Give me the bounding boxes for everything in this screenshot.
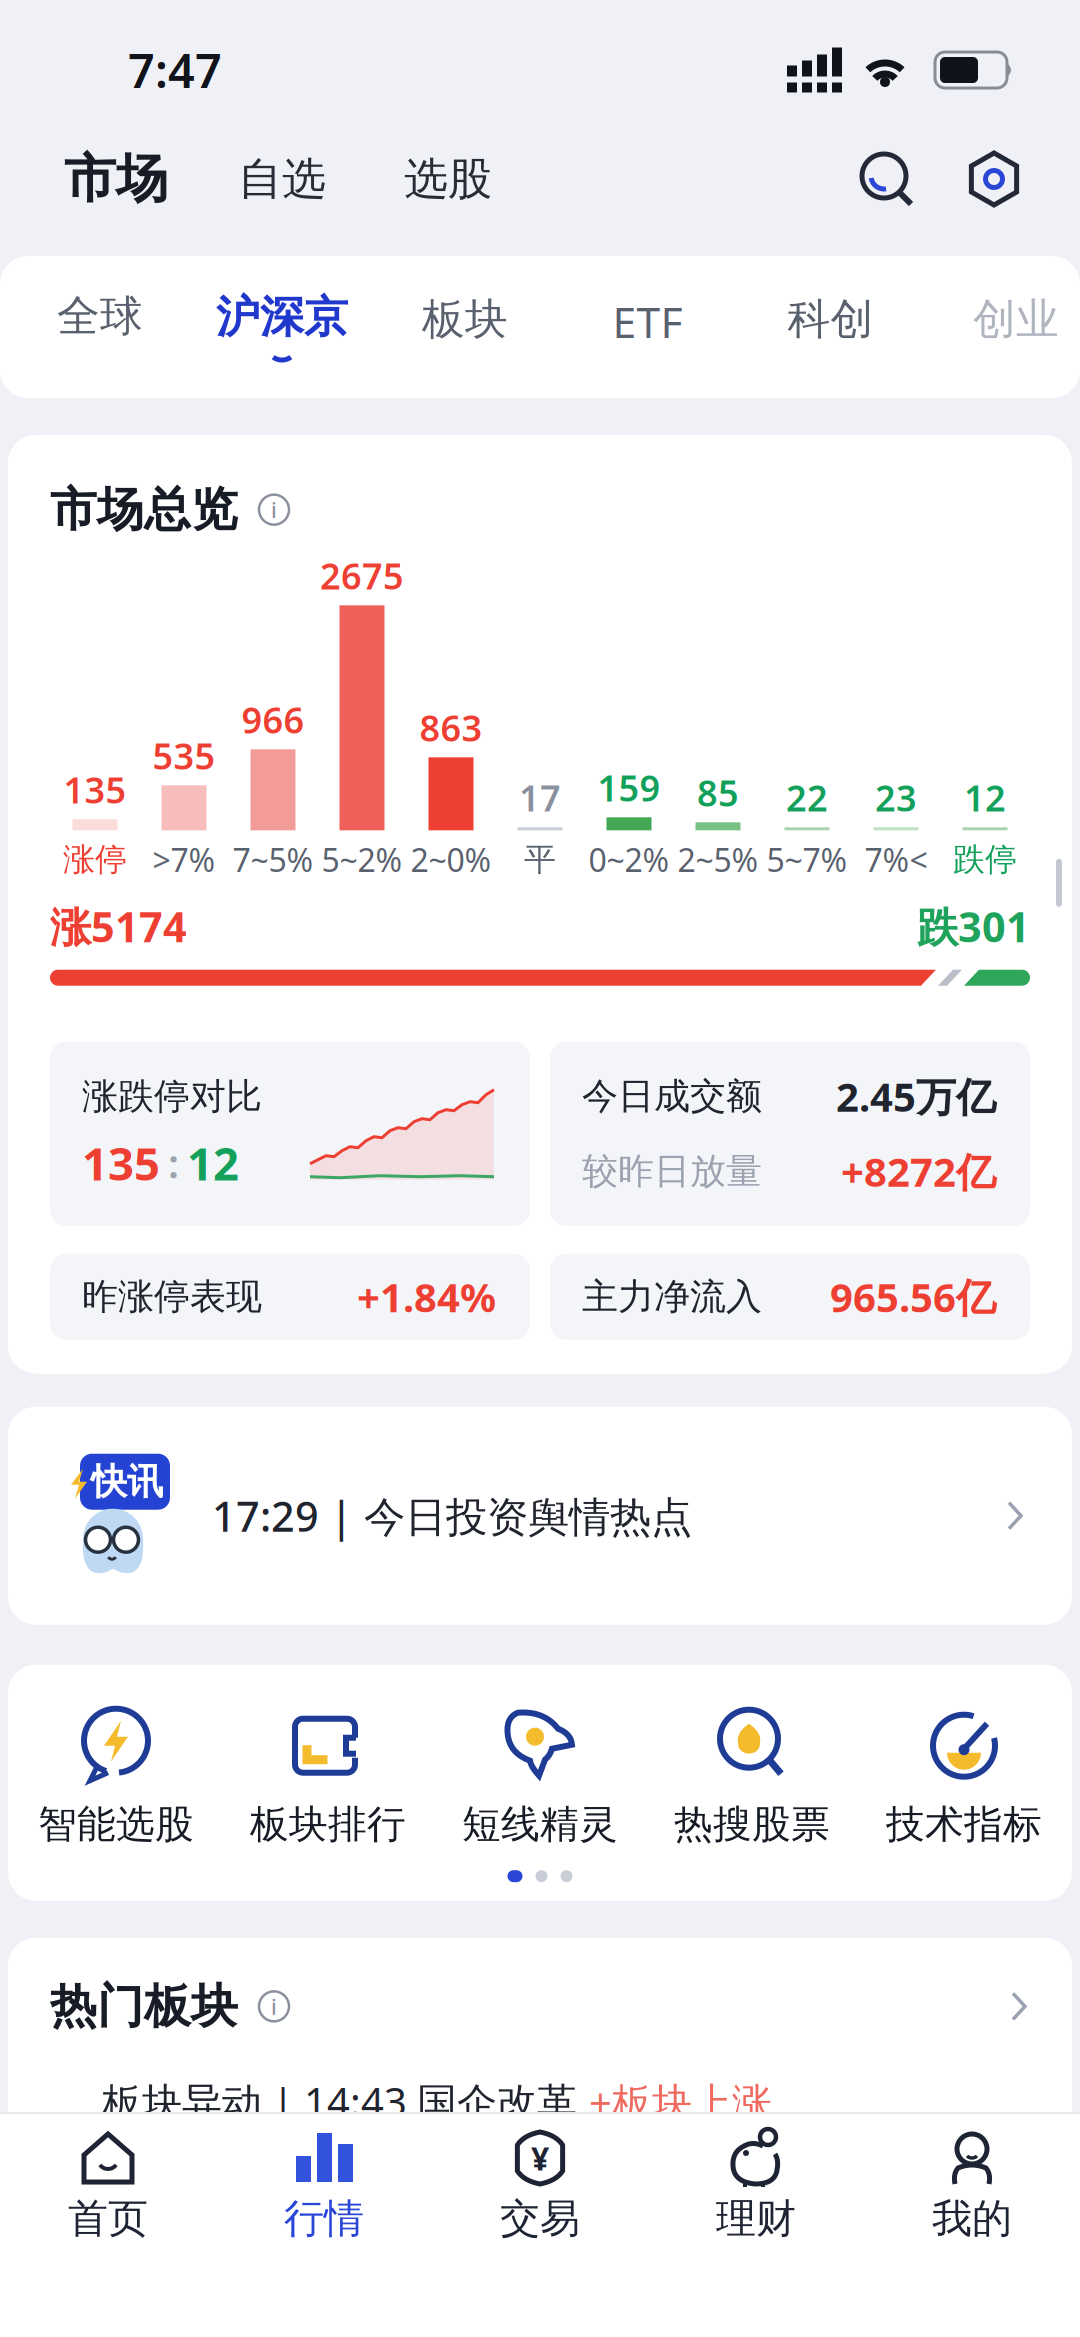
staticText: 135 [63,765,126,813]
button[interactable]: 技术指标 [858,1701,1070,1848]
staticText: +1.84% [357,1270,496,1323]
staticText: 首页 [68,2194,148,2243]
button[interactable]: 全球 [10,290,190,342]
staticText: 2~5% [677,838,758,881]
staticText: 科创 [787,293,873,345]
staticText: 我的 [932,2194,1012,2243]
staticText: 5~2% [321,838,402,881]
button[interactable] [915,151,1022,207]
staticText: ¥ [531,2137,549,2179]
staticText: 12 [187,1133,239,1193]
staticText: 创业 [973,293,1059,345]
staticText: 22 [786,773,828,821]
button[interactable]: 我的 [864,2128,1080,2243]
button[interactable]: 市场 [64,147,168,211]
staticText: 理财 [716,2194,796,2243]
staticText: 涨5174 [50,899,187,954]
staticText: 965.56亿 [830,1270,996,1323]
staticText: i [271,495,277,524]
staticText: 17:29 | 今日投资舆情热点 [212,1488,692,1543]
staticText: >7% [152,838,215,881]
staticText: 2675 [320,551,404,599]
button[interactable]: 理财 [648,2128,864,2243]
staticText: 23 [875,773,917,821]
staticText: 7~5% [232,838,313,881]
staticText: i [271,1992,277,2020]
staticText: 今日成交额 [582,1074,762,1118]
staticText: 966 [241,695,304,743]
button[interactable]: 短线精灵 [434,1701,646,1848]
staticText: 快讯 [91,1460,163,1504]
staticText: 85 [697,768,739,816]
button[interactable]: 板块 [374,290,556,345]
staticText: 交易 [500,2194,580,2243]
staticText: 全球 [57,290,143,342]
staticText: 12 [964,773,1006,821]
staticText: 7:47 [128,39,222,101]
button[interactable]: 科创 [739,290,922,345]
button[interactable]: 行情 [216,2128,432,2243]
button[interactable]: ETF [556,290,739,350]
staticText: 板块异动 | 14:43 国企改革 [102,2075,589,2128]
button[interactable]: 板块排行 [222,1701,434,1848]
staticText: 跌停 [953,840,1017,879]
staticText: 2.45万亿 [836,1070,996,1123]
staticText: 行情 [284,2194,364,2243]
staticText: 市场 [64,147,168,211]
button[interactable]: 快讯 [8,1407,1072,1625]
button[interactable]: 沪深京 [190,290,374,362]
button[interactable]: 选股 [326,152,492,206]
button[interactable]: 自选 [168,152,326,206]
staticText: 热门板块 [50,1978,238,2035]
staticText: 板块排行 [250,1801,406,1848]
staticText: 沪深京 [216,290,348,344]
staticText: 涨停 [63,840,127,879]
staticText: 跌301 [917,899,1030,954]
staticText: 智能选股 [38,1801,194,1848]
staticText: 159 [597,763,660,811]
staticText: 市场总览 [50,481,238,538]
staticText: 板块 [422,293,508,345]
button[interactable]: ¥ [432,2128,648,2243]
staticText: 2~0% [410,838,491,881]
staticText: : [168,1136,179,1189]
staticText: 短线精灵 [462,1801,618,1848]
staticText: +8272亿 [841,1145,996,1198]
staticText: 自选 [238,152,326,206]
button[interactable]: 创业 [922,290,1080,345]
staticText: ETF [612,293,682,350]
button[interactable]: 智能选股 [10,1701,222,1848]
button[interactable] [859,151,915,207]
staticText: 选股 [404,152,492,206]
staticText: 平 [524,840,556,879]
staticText: 热搜股票 [674,1801,830,1848]
staticText: 主力净流入 [582,1275,762,1319]
staticText: 0~2% [588,838,669,881]
staticText: 技术指标 [886,1801,1042,1848]
staticText: 较昨日放量 [582,1149,762,1193]
button[interactable]: 热搜股票 [646,1701,858,1848]
staticText: 135 [82,1133,160,1193]
staticText: 17 [519,773,561,821]
staticText: 863 [419,703,482,751]
staticText: 昨涨停表现 [82,1275,262,1319]
staticText: +板块上涨 [589,2075,772,2128]
staticText: 7%< [864,838,927,881]
staticText: 5~7% [766,838,847,881]
staticText: 涨跌停对比 [82,1074,262,1119]
button[interactable]: 首页 [0,2128,216,2243]
staticText: 535 [152,731,215,779]
